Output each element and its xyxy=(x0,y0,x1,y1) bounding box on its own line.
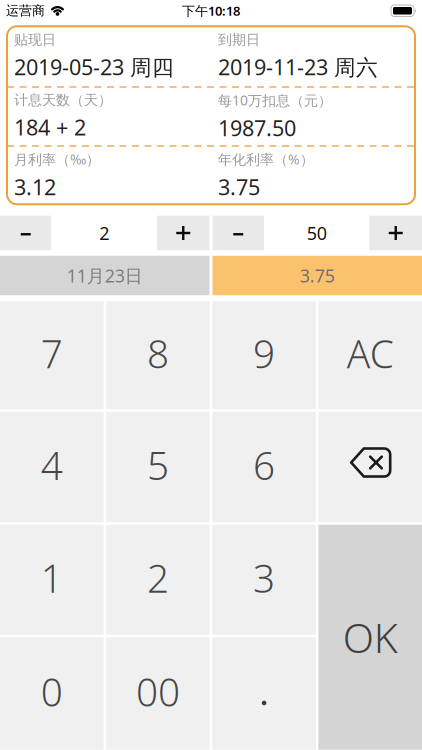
button[interactable]: 3.75 xyxy=(212,256,422,295)
button[interactable]: Increment xyxy=(369,216,422,250)
staticText: 计息天数（天） xyxy=(14,92,112,109)
button[interactable]: Decimal point xyxy=(212,637,316,750)
button[interactable]: 8 xyxy=(106,301,210,409)
staticText: 下午10:18 xyxy=(182,2,240,19)
staticText: 1 xyxy=(41,552,63,603)
button[interactable]: 00 xyxy=(106,637,210,750)
button[interactable]: Increment xyxy=(157,216,209,250)
staticText: 3.12 xyxy=(14,172,56,201)
button[interactable]: 11月23日 xyxy=(0,256,209,295)
staticText: 2 xyxy=(147,552,169,603)
staticText: 月利率（‰） xyxy=(14,150,100,168)
staticText: AC xyxy=(347,328,394,379)
staticText: 1987.50 xyxy=(218,113,296,142)
staticText: 8 xyxy=(147,328,169,379)
button[interactable]: Delete xyxy=(318,412,422,522)
button[interactable]: AC xyxy=(318,301,422,409)
button[interactable]: 7 xyxy=(0,301,104,409)
staticText: 年化利率（%） xyxy=(218,150,314,168)
button[interactable]: 2 xyxy=(106,525,210,635)
button[interactable]: 3 xyxy=(212,525,316,635)
staticText: 2019-11-23 周六 xyxy=(218,52,378,81)
staticText: 4 xyxy=(41,439,63,491)
button[interactable]: 4 xyxy=(0,412,104,522)
staticText: 运营商 xyxy=(6,3,45,19)
button[interactable]: Decrement xyxy=(0,216,51,250)
staticText: 11月23日 xyxy=(67,264,143,287)
staticText: 9 xyxy=(253,328,275,379)
staticText: 2 xyxy=(99,221,109,245)
staticText: 3 xyxy=(253,552,275,603)
button[interactable]: 5 xyxy=(106,412,210,522)
button[interactable]: 9 xyxy=(212,301,316,409)
staticText: 每10万扣息（元） xyxy=(218,91,332,109)
staticText: 7 xyxy=(41,328,63,379)
staticText: 6 xyxy=(253,439,275,491)
button[interactable]: Decrement xyxy=(212,216,264,250)
staticText: 2019-05-23 周四 xyxy=(14,52,174,81)
staticText: 184 + 2 xyxy=(14,113,86,141)
button[interactable]: 0 xyxy=(0,637,104,750)
staticText: 5 xyxy=(147,439,169,491)
button[interactable]: OK xyxy=(318,525,422,750)
staticText: 3.75 xyxy=(218,172,260,201)
staticText: 到期日 xyxy=(218,31,260,48)
staticText: 贴现日 xyxy=(14,31,56,48)
staticText: 0 xyxy=(41,666,63,717)
button[interactable]: 6 xyxy=(212,412,316,522)
staticText: 50 xyxy=(307,221,327,245)
staticText: OK xyxy=(343,610,398,664)
button[interactable]: 1 xyxy=(0,525,104,635)
staticText: 3.75 xyxy=(300,264,335,287)
staticText: 00 xyxy=(136,666,180,717)
